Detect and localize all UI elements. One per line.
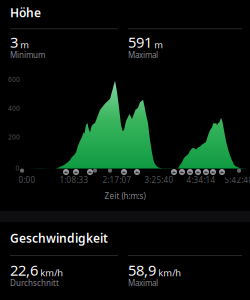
staticText: 5:42:48: [224, 175, 250, 185]
staticText: Zeit (h:m:s): [104, 191, 145, 201]
staticText: 3:25:40: [144, 175, 173, 185]
staticText: 4:34:14: [186, 175, 215, 185]
staticText: 591: [128, 32, 152, 52]
staticText: m: [20, 38, 29, 51]
staticText: Geschwindigkeit: [10, 230, 108, 246]
staticText: Minimum: [10, 50, 45, 60]
staticText: 58,9: [128, 260, 156, 280]
staticText: 200: [8, 133, 20, 141]
staticText: 1:08:33: [59, 175, 88, 185]
staticText: 3: [10, 32, 18, 52]
staticText: km/h: [40, 266, 63, 279]
staticText: 0: [15, 164, 19, 172]
staticText: 2:17:07: [102, 175, 131, 185]
staticText: Höhe: [10, 4, 41, 20]
staticText: 22,6: [10, 260, 38, 280]
staticText: 0:00: [18, 175, 35, 185]
staticText: km/h: [158, 266, 181, 279]
staticText: 600: [8, 75, 20, 84]
staticText: Maximal: [128, 278, 158, 288]
staticText: Durchschnitt: [10, 278, 59, 288]
staticText: m: [154, 38, 163, 51]
staticText: Maximal: [128, 50, 158, 60]
staticText: 400: [8, 104, 20, 113]
